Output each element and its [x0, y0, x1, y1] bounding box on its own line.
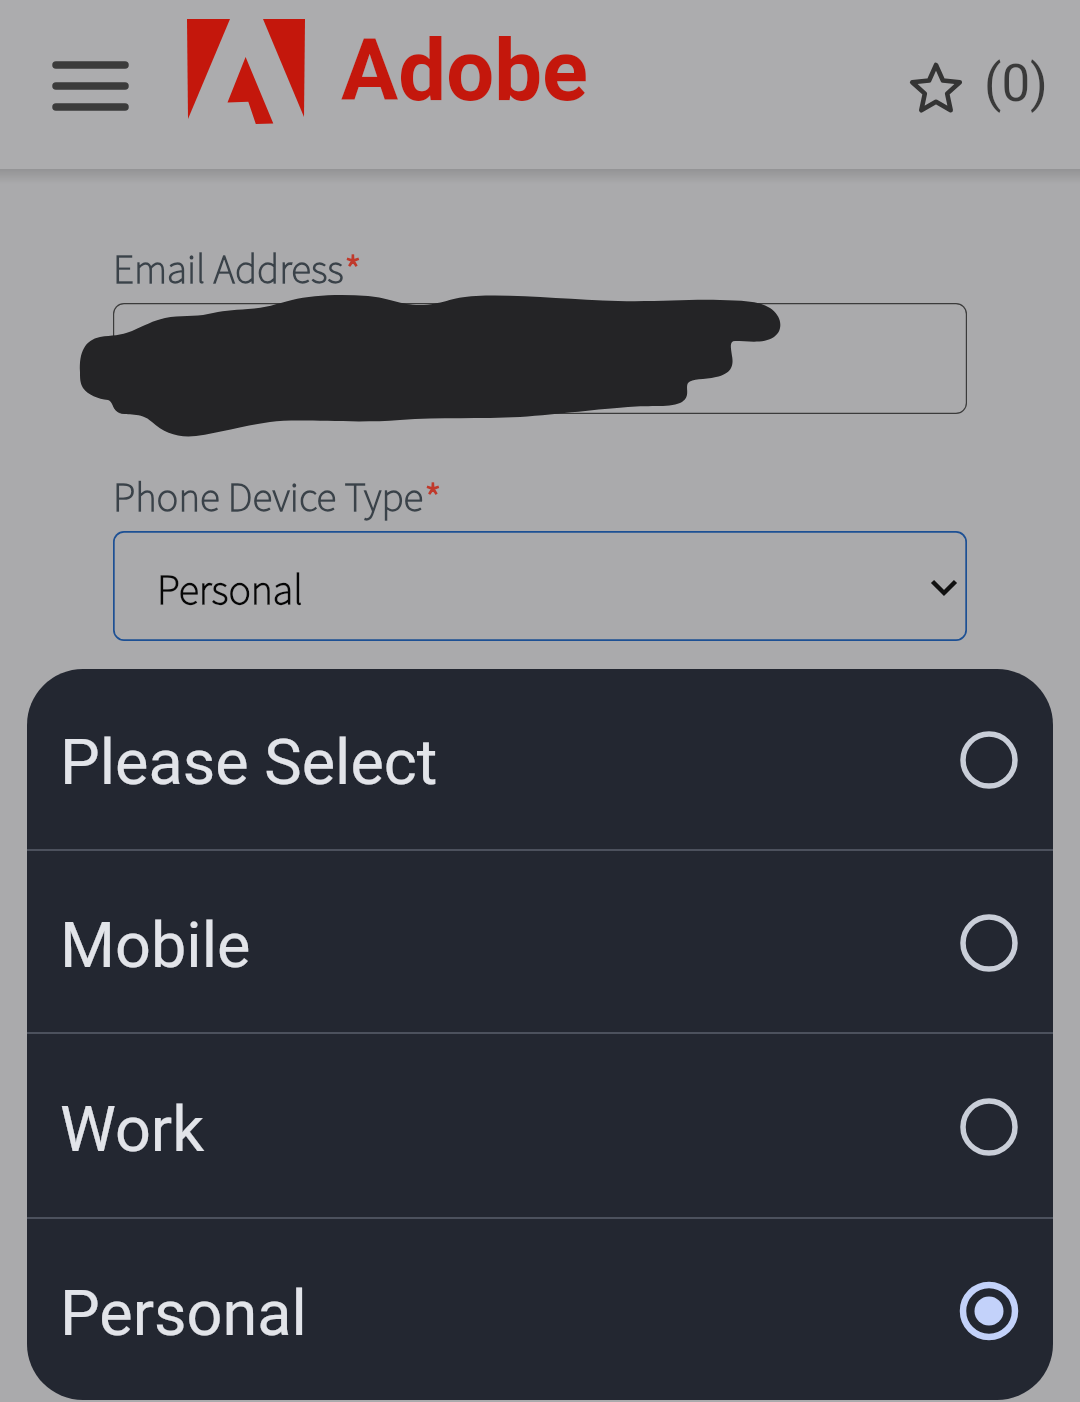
button[interactable]: Please Select [27, 669, 1053, 849]
button[interactable]: Personal [27, 1219, 1053, 1400]
staticText: Personal [157, 561, 303, 621]
button[interactable]: Menu [44, 52, 137, 120]
staticText: Please Select [60, 726, 438, 800]
staticText: * [424, 469, 442, 535]
staticText: Mobile [60, 909, 251, 983]
staticText: Phone Device Type [113, 469, 424, 527]
staticText: Work [60, 1093, 205, 1167]
staticText: * [344, 241, 362, 307]
button[interactable]: Adobe [341, 21, 589, 121]
button[interactable]: Adobe [180, 14, 310, 126]
button[interactable]: (0) [984, 54, 1048, 114]
staticText: Email Address [113, 241, 344, 299]
button[interactable]: Mobile [27, 851, 1053, 1032]
button[interactable]: error [113, 303, 967, 414]
button[interactable]: Favourites [903, 57, 969, 121]
button[interactable]: Work [27, 1034, 1053, 1217]
staticText: Personal [60, 1277, 307, 1351]
button[interactable]: Personal [113, 531, 967, 641]
